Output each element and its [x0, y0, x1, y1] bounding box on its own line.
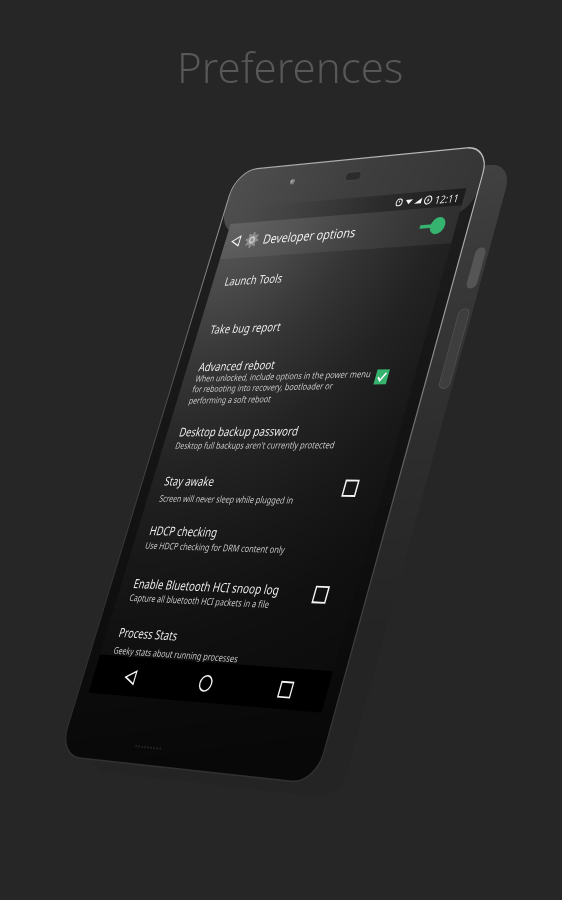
button[interactable]: Recent apps [272, 675, 299, 703]
staticText: Enable Bluetooth HCI snoop log [131, 575, 282, 599]
button[interactable]: Enable Bluetooth HCI snoop log [111, 558, 362, 633]
staticText: Capture all bluetooth HCI packets in a f… [128, 591, 272, 611]
staticText: Process Stats [117, 624, 180, 644]
staticText: Take bug report [208, 318, 283, 337]
staticText: Launch Tools [223, 270, 285, 289]
staticText: Desktop backup password [177, 423, 301, 440]
staticText: 12:11 [433, 190, 461, 207]
button[interactable]: Back [118, 664, 143, 690]
staticText: Use HDCP checking for DRM content only [144, 539, 287, 556]
button[interactable]: Stay awake [142, 462, 391, 520]
staticText: Screen will never sleep while plugged in [158, 492, 295, 506]
button[interactable]: Navigate up [226, 231, 246, 251]
staticText: HDCP checking [147, 522, 220, 541]
button[interactable]: Take bug report [191, 293, 437, 353]
button[interactable]: Launch Tools [206, 243, 451, 305]
staticText: Desktop full backups aren't currently pr… [174, 438, 337, 451]
button[interactable]: Home [192, 669, 219, 696]
button[interactable]: HDCP checking [129, 515, 375, 567]
button[interactable]: Desktop backup password [158, 410, 405, 462]
staticText: Advanced reboot [197, 356, 278, 375]
staticText: When unlocked, include options in the po… [187, 367, 373, 406]
staticText: Geeky stats about running processes [112, 643, 240, 665]
button[interactable]: Toggle developer options [412, 211, 454, 241]
staticText: Stay awake [162, 473, 217, 490]
staticText: Developer options [261, 223, 359, 247]
button[interactable]: Advanced reboot [173, 345, 423, 414]
button[interactable]: Process Stats [100, 619, 343, 671]
staticText: Preferences [177, 38, 404, 95]
